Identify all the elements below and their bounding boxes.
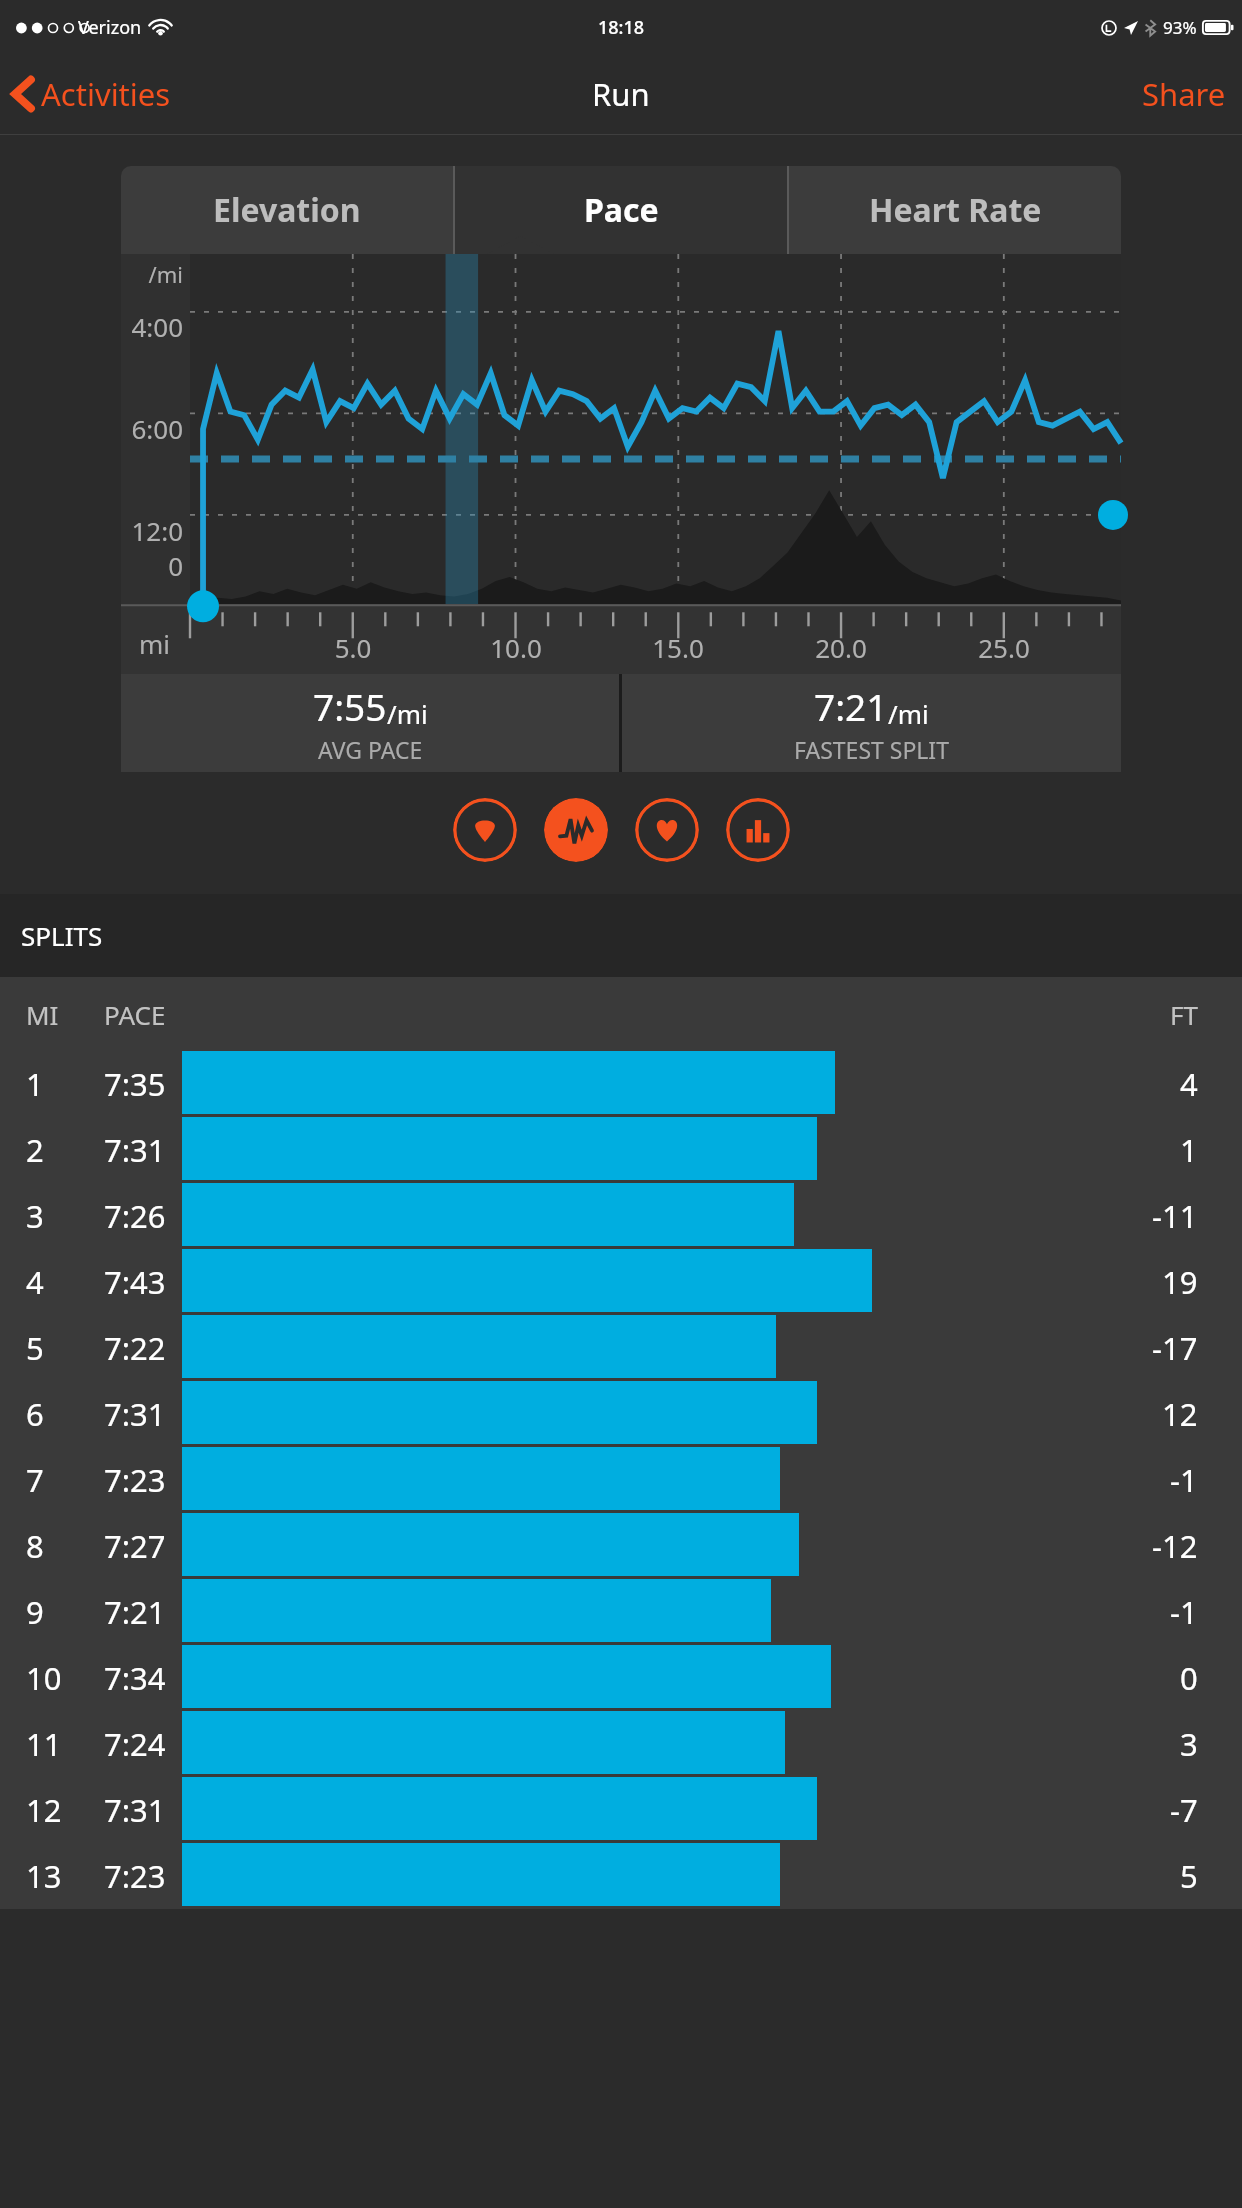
staticText: 4 [1180,1063,1198,1105]
staticText: 1 [1180,1129,1198,1171]
staticText: 7:23 [104,1855,166,1897]
button[interactable]: Activities [0,65,185,123]
staticText: MI [26,997,59,1032]
staticText: -17 [1152,1327,1198,1369]
button[interactable]: Splits [726,798,790,862]
staticText: 8 [26,1525,44,1567]
button[interactable]: 1 [0,1051,1242,1117]
button[interactable]: Pace chart [544,798,608,862]
button[interactable]: 10 [0,1645,1242,1711]
button[interactable]: 13 [0,1843,1242,1909]
staticText: 10.0 [480,630,552,665]
staticText: 7:23 [104,1459,166,1501]
staticText: 0 [1180,1657,1198,1699]
staticText: Heart Rate [869,188,1042,232]
staticText: 13 [26,1855,62,1897]
staticText: 9 [26,1591,44,1633]
staticText: 7:24 [104,1723,166,1765]
staticText: 7:43 [104,1261,166,1303]
staticText: 25.0 [968,630,1040,665]
staticText: -7 [1170,1789,1198,1831]
staticText: 5 [1180,1855,1198,1897]
button[interactable]: 4 [0,1249,1242,1315]
staticText: 5 [26,1327,44,1369]
staticText: SPLITS [21,918,103,953]
staticText: -1 [1170,1591,1198,1633]
button[interactable]: 11 [0,1711,1242,1777]
staticText: 5.0 [317,630,389,665]
staticText: 20.0 [805,630,877,665]
button[interactable]: 7:55 [121,674,619,772]
button[interactable]: 8 [0,1513,1242,1579]
staticText: /mi [387,696,428,731]
staticText: -1 [1170,1459,1198,1501]
staticText: mi [139,626,171,661]
staticText: 7:34 [104,1657,166,1699]
staticText: 7:27 [104,1525,166,1567]
staticText: AVG PACE [318,734,423,765]
staticText: 15.0 [642,630,714,665]
staticText: 7 [26,1459,44,1501]
button[interactable]: Share [1126,63,1242,125]
staticText: 12 [1162,1393,1198,1435]
staticText: 4:00 [121,309,183,344]
staticText: 7:31 [104,1393,166,1435]
staticText: 7:21 [814,681,888,731]
staticText: 7:35 [104,1063,166,1105]
button[interactable]: Heart Rate [789,166,1121,254]
button[interactable]: Elevation [121,166,453,254]
staticText: 6:00 [121,411,183,446]
staticText: Verizon [78,15,142,40]
button[interactable]: 7 [0,1447,1242,1513]
staticText: 7:21 [104,1591,166,1633]
staticText: 11 [26,1723,62,1765]
button[interactable]: Map [453,798,517,862]
staticText: 7:31 [104,1129,166,1171]
staticText: Pace [584,188,659,232]
staticText: PACE [104,997,166,1032]
staticText: 3 [26,1195,44,1237]
staticText: 7:26 [104,1195,166,1237]
staticText: 1 [26,1063,44,1105]
button[interactable]: Heart rate [635,798,699,862]
staticText: 6 [26,1393,44,1435]
staticText: 7:55 [313,681,387,731]
button[interactable]: 6 [0,1381,1242,1447]
staticText: -12 [1152,1525,1198,1567]
staticText: 2 [26,1129,44,1171]
button[interactable]: 3 [0,1183,1242,1249]
staticText: FT [1170,997,1198,1032]
staticText: 12:00 [121,513,183,583]
button[interactable]: 5 [0,1315,1242,1381]
staticText: -11 [1152,1195,1198,1237]
button[interactable]: 7:21 [622,674,1121,772]
staticText: 7:22 [104,1327,166,1369]
staticText: Elevation [213,188,361,232]
staticText: 7:31 [104,1789,166,1831]
staticText: 4 [26,1261,44,1303]
button[interactable]: 9 [0,1579,1242,1645]
button[interactable]: Pace [455,166,787,254]
staticText: 10 [26,1657,62,1699]
staticText: /mi [121,259,183,289]
staticText: Activities [41,73,171,115]
staticText: Run [592,73,650,115]
staticText: 18:18 [598,15,645,40]
staticText: FASTEST SPLIT [794,734,949,765]
staticText: /mi [888,696,929,731]
staticText: 19 [1162,1261,1198,1303]
button[interactable]: 12 [0,1777,1242,1843]
staticText: 12 [26,1789,62,1831]
staticText: 3 [1180,1723,1198,1765]
staticText: 93% [1163,16,1197,39]
button[interactable]: 2 [0,1117,1242,1183]
